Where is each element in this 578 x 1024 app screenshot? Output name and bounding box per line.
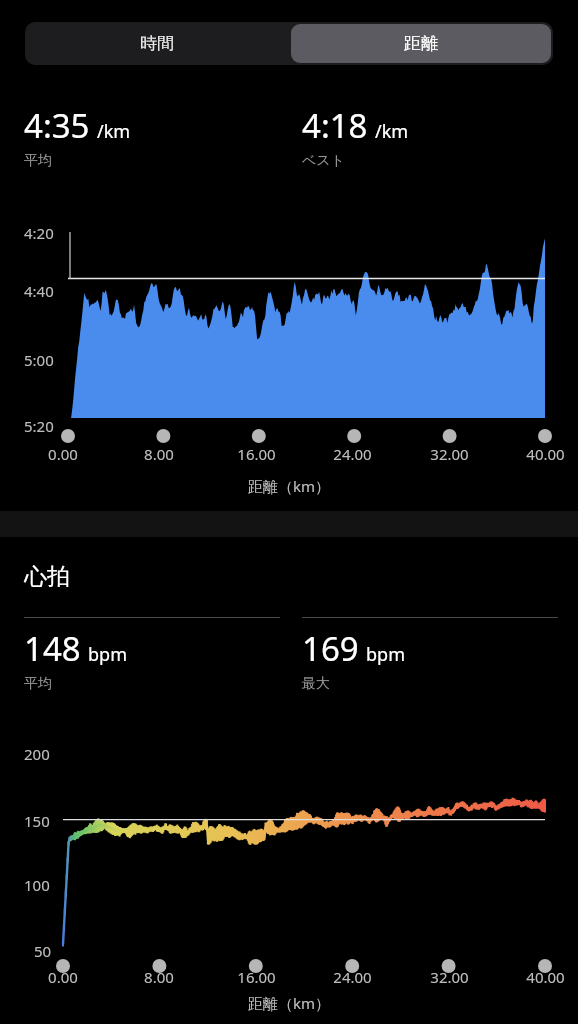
staticText: 40.00 xyxy=(526,967,565,987)
staticText: 4:20 xyxy=(24,223,54,243)
staticText: /km xyxy=(97,119,131,144)
staticText: 16.00 xyxy=(237,967,276,987)
staticText: 最大 xyxy=(302,675,330,693)
button[interactable]: 距離 xyxy=(291,24,551,63)
staticText: 5:20 xyxy=(24,416,54,436)
staticText: 距離 xyxy=(404,33,438,54)
staticText: 心拍 xyxy=(24,562,70,591)
staticText: 4:18 xyxy=(302,103,368,148)
staticText: 4:40 xyxy=(24,281,54,301)
staticText: 16.00 xyxy=(237,444,276,464)
staticText: bpm xyxy=(88,642,127,667)
staticText: 0.00 xyxy=(48,444,78,464)
staticText: 距離（km） xyxy=(248,476,331,496)
staticText: 平均 xyxy=(24,675,52,693)
staticText: 8.00 xyxy=(144,967,174,987)
staticText: 距離（km） xyxy=(248,993,331,1013)
staticText: 4:35 xyxy=(24,103,90,148)
staticText: 50 xyxy=(34,941,52,961)
staticText: 時間 xyxy=(140,33,174,54)
staticText: 200 xyxy=(24,744,50,764)
staticText: /km xyxy=(375,119,409,144)
staticText: 32.00 xyxy=(430,967,469,987)
staticText: 0.00 xyxy=(48,967,78,987)
staticText: 148 xyxy=(24,626,81,671)
staticText: 100 xyxy=(24,875,50,895)
staticText: 169 xyxy=(302,626,359,671)
staticText: 8.00 xyxy=(144,444,174,464)
staticText: 150 xyxy=(24,811,50,831)
staticText: ベスト xyxy=(302,152,345,170)
staticText: 24.00 xyxy=(333,444,372,464)
staticText: 32.00 xyxy=(430,444,469,464)
button[interactable]: 時間 xyxy=(25,22,289,65)
staticText: 5:00 xyxy=(24,350,54,370)
staticText: 24.00 xyxy=(333,967,372,987)
staticText: bpm xyxy=(366,642,405,667)
staticText: 40.00 xyxy=(526,444,565,464)
staticText: 平均 xyxy=(24,152,52,170)
